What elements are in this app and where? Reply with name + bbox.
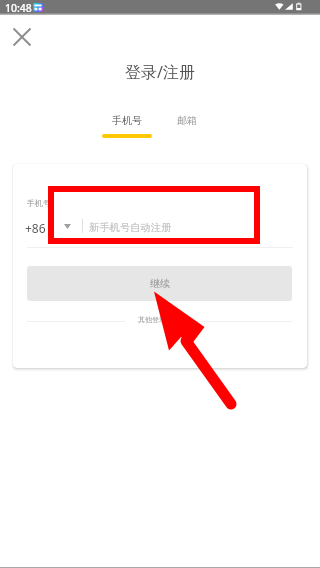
staticText: 新手机号自动注册 [89, 221, 172, 234]
staticText: 手机号 [112, 114, 142, 127]
staticText: 10:48 [5, 1, 32, 15]
button[interactable]: 继续 [27, 266, 292, 301]
staticText: 继续 [150, 277, 170, 290]
staticText: 手机号 [27, 198, 51, 208]
button[interactable]: +86 [23, 212, 79, 238]
staticText: 登录/注册 [125, 61, 195, 83]
staticText: +86 [25, 220, 46, 236]
button[interactable]: 手机号 [102, 114, 152, 138]
staticText: 邮箱 [177, 114, 197, 127]
staticText: 其他登录方式 [138, 315, 180, 324]
button[interactable]: 新手机号自动注册 [85, 212, 293, 238]
button[interactable]: 邮箱 [162, 114, 212, 138]
button[interactable]: Close [11, 26, 33, 48]
